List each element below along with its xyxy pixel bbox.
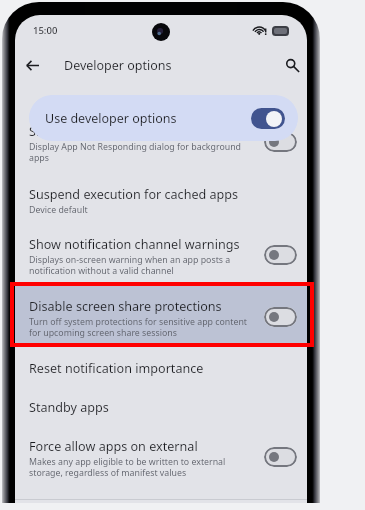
staticText: Force allow apps on external <box>29 438 198 455</box>
button[interactable]: Use developer options <box>29 95 298 141</box>
button[interactable]: Toggle on <box>251 108 285 129</box>
staticText: 15:00 <box>33 24 58 37</box>
button[interactable]: Back <box>18 51 46 79</box>
staticText: Makes any app eligible to be written to … <box>29 456 226 479</box>
button[interactable]: Toggle off <box>264 245 297 265</box>
staticText: Suspend execution for cached apps <box>29 186 239 203</box>
staticText: Standby apps <box>29 399 109 416</box>
staticText: Disable screen share protections <box>29 298 222 315</box>
staticText: Show notification channel warnings <box>29 236 240 253</box>
staticText: Show background ANR dialog <box>29 123 205 140</box>
button[interactable]: Toggle off <box>264 447 297 467</box>
button[interactable]: Toggle off <box>264 132 297 152</box>
button[interactable] <box>15 286 307 344</box>
staticText: Use developer options <box>45 110 177 127</box>
staticText: Reset notification importance <box>29 360 204 377</box>
staticText: Displays on-screen warning when an app p… <box>29 254 231 277</box>
staticText: Display App Not Responding dialog for ba… <box>29 141 242 164</box>
staticText: Device default <box>29 204 88 216</box>
staticText: Turn off system protections for sensitiv… <box>29 316 248 339</box>
button[interactable]: Search <box>278 51 306 79</box>
button[interactable]: Toggle off <box>264 307 297 327</box>
staticText: Developer options <box>64 57 172 74</box>
